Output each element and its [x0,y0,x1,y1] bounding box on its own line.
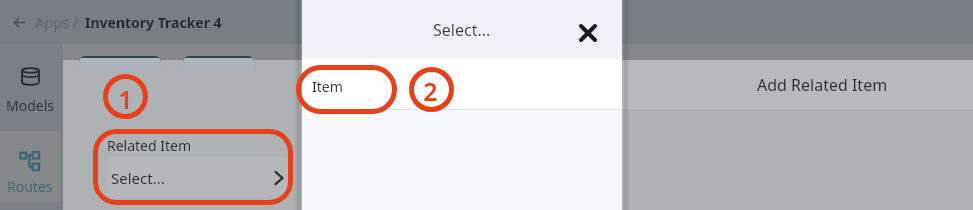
button[interactable]: Models [0,55,60,126]
button[interactable]: Add Related Item [622,60,973,110]
staticText: Models [6,96,54,115]
staticText: Inventory Tracker 4 [85,13,222,32]
button[interactable]: Tab 2 [183,56,254,72]
staticText: Related Item [107,136,192,155]
staticText: Add Related Item [757,74,888,96]
staticText: Select... [433,19,491,41]
button[interactable]: Tab 1 [79,56,161,72]
button[interactable]: Routes [0,131,60,202]
staticText: Routes [7,177,53,196]
staticText: Item [312,77,343,96]
button[interactable]: Select... [107,157,290,198]
button[interactable]: Back [8,11,30,33]
staticText: 2 [420,74,441,108]
staticText: Select... [111,168,165,188]
staticText: 1 [115,82,136,116]
staticText: Apps / [35,12,79,32]
button[interactable]: Item [302,59,622,109]
button[interactable]: Close [575,20,601,46]
